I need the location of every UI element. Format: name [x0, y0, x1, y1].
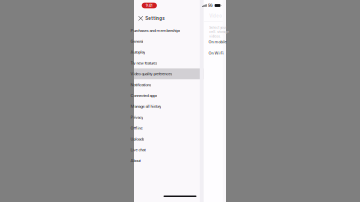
staticText: Select your — [209, 26, 226, 29]
staticText: On mobile — [208, 39, 226, 44]
button[interactable]: Video quality preferences — [134, 68, 206, 79]
staticText: Settings — [145, 16, 164, 21]
staticText: Purchases and memberships — [130, 28, 180, 33]
staticText: 9:41 — [146, 3, 153, 8]
button[interactable]: Live chat — [134, 144, 206, 155]
staticText: Live chat — [130, 147, 145, 152]
button[interactable]: Offline — [134, 123, 206, 133]
button[interactable]: Try new features — [134, 57, 206, 68]
button[interactable]: Notifications — [134, 79, 206, 90]
staticText: Try new features — [130, 60, 157, 65]
button[interactable]: Privacy — [134, 112, 206, 123]
staticText: Offline — [130, 126, 142, 131]
staticText: Autoplay — [130, 50, 145, 55]
staticText: Video quality preferences — [130, 71, 172, 76]
button[interactable]: General — [134, 36, 206, 47]
staticText: Privacy — [130, 115, 143, 120]
staticText: Connected apps — [130, 93, 157, 98]
staticText: Uploads — [130, 136, 144, 141]
button[interactable]: Purchases and memberships — [134, 25, 206, 36]
button[interactable]: Autoplay — [134, 47, 206, 57]
button[interactable]: Connected apps — [134, 90, 206, 101]
staticText: 5G — [208, 3, 213, 8]
staticText: videos. — [209, 35, 221, 38]
button[interactable]: Close — [136, 13, 145, 23]
staticText: General — [130, 39, 143, 44]
staticText: Manage all history — [130, 104, 161, 109]
button[interactable]: Uploads — [134, 133, 206, 144]
staticText: Notifications — [130, 82, 151, 87]
staticText: On Wi-Fi — [208, 51, 223, 56]
staticText: cell. storage — [209, 30, 229, 34]
staticText: About — [130, 158, 140, 163]
button[interactable]: About — [134, 155, 206, 166]
staticText: Video — [209, 13, 222, 19]
button[interactable]: Manage all history — [134, 101, 206, 112]
